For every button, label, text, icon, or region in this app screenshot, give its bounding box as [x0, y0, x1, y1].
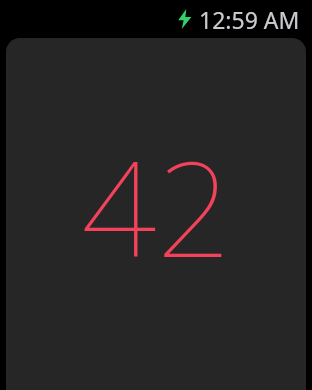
other: Charging — [177, 9, 192, 29]
button[interactable]: 42 — [6, 38, 306, 390]
staticText: 42 — [81, 116, 232, 296]
staticText: 12:59 AM — [199, 4, 300, 35]
